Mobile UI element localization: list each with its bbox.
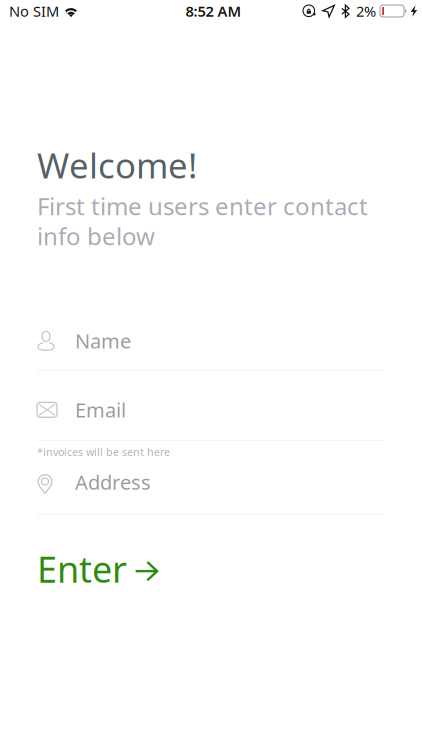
button[interactable]: Name [37,331,384,351]
button[interactable]: Email [37,400,384,420]
button[interactable]: Address [37,472,384,492]
staticText: Name [75,327,131,354]
staticText: Email [75,396,126,423]
staticText: First time users enter contact info belo… [37,190,368,252]
staticText: *invoices will be sent here [37,445,170,459]
staticText: Address [75,469,151,495]
staticText: Welcome! [37,142,197,188]
staticText: Enter [37,545,127,593]
staticText: 8:52 AM [185,1,241,21]
button[interactable]: Enter [37,545,158,593]
staticText: No SIM [9,1,59,21]
staticText: 2% [356,1,376,21]
